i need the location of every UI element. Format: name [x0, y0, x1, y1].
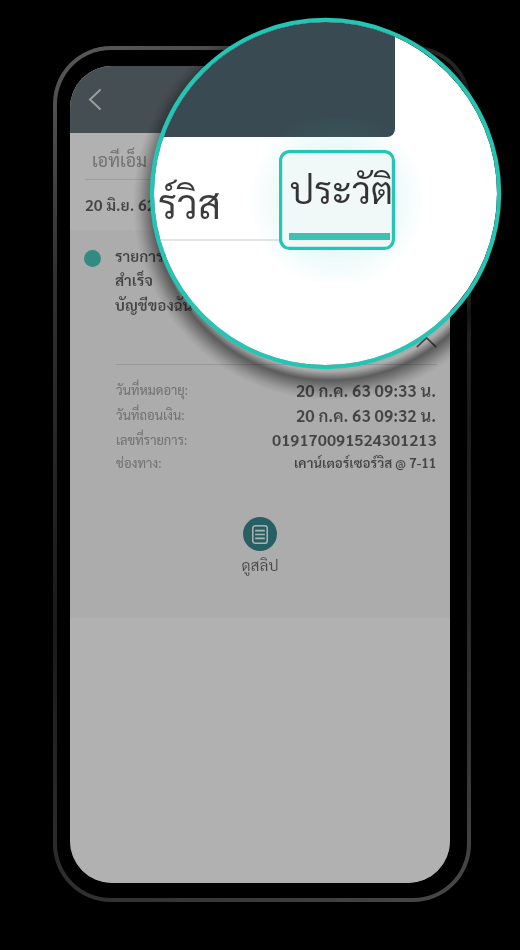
- staticText: ร์วิส: [158, 176, 222, 228]
- staticText: 20 ก.ค. 63 09:33 น.: [296, 379, 437, 400]
- button[interactable]: Collapse: [407, 323, 445, 361]
- button[interactable]: ดูสลิป: [230, 517, 290, 575]
- staticText: บัญชีของฉัน: [115, 295, 193, 315]
- button[interactable]: Back: [72, 76, 118, 122]
- button[interactable]: เอทีเอ็ม: [70, 133, 170, 180]
- staticText: เอทีเอ็ม: [92, 148, 148, 171]
- staticText: ดูสลิป: [241, 555, 279, 575]
- staticText: วันที่ถอนเงิน:: [116, 406, 185, 423]
- button[interactable]: ประวัติ: [270, 133, 370, 180]
- staticText: ประวัติ: [290, 164, 394, 212]
- button[interactable]: ประวัติ: [279, 150, 395, 250]
- staticText: 20 ก.ค. 63 09:32 น.: [296, 404, 437, 425]
- staticText: รายการถอนเงินไม่ใช้บัตร: [115, 246, 274, 266]
- staticText: 20 มิ.ย. 62: [85, 194, 156, 214]
- staticText: 019170091524301213: [272, 429, 437, 450]
- staticText: ช่องทาง:: [116, 454, 162, 471]
- staticText: เลขที่รายการ:: [116, 431, 188, 448]
- button[interactable]: เซอร์วิส: [170, 133, 270, 180]
- staticText: วันที่หมดอายุ:: [116, 381, 189, 398]
- staticText: ประวัติ: [295, 148, 346, 171]
- staticText: สำเร็จ: [115, 270, 154, 290]
- staticText: เคาน์เตอร์เซอร์วิส @ 7-11: [294, 454, 437, 471]
